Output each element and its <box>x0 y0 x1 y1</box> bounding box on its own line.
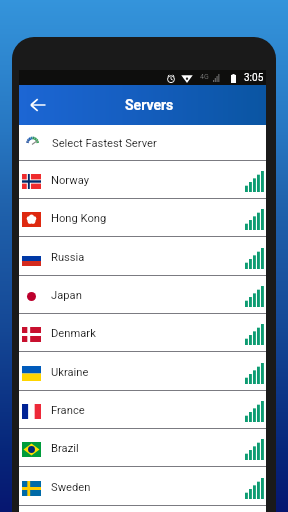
button[interactable]: Russia <box>19 237 266 275</box>
button[interactable]: Ukraine <box>19 352 266 390</box>
button[interactable]: Norway <box>19 161 266 198</box>
staticText: Norway <box>51 174 89 187</box>
staticText: Servers <box>125 97 174 113</box>
staticText: Ukraine <box>51 366 89 379</box>
staticText: Hong Kong <box>51 212 107 225</box>
button[interactable]: Japan <box>19 276 266 313</box>
button[interactable]: Brazil <box>19 429 266 466</box>
staticText: France <box>51 404 85 417</box>
button[interactable]: France <box>19 391 266 428</box>
staticText: Russia <box>51 251 85 264</box>
staticText: 3:05 <box>244 72 264 84</box>
staticText: Sweden <box>51 481 91 494</box>
button[interactable]: Denmark <box>19 314 266 351</box>
staticText: Japan <box>51 289 82 302</box>
staticText: 4G <box>200 73 209 81</box>
button[interactable]: Back <box>20 87 56 123</box>
staticText: Brazil <box>51 442 79 455</box>
button[interactable]: Hong Kong <box>19 199 266 236</box>
staticText: Denmark <box>51 327 96 340</box>
button[interactable]: Sweden <box>19 467 266 505</box>
button[interactable]: Select Fastest Server <box>19 125 266 160</box>
staticText: Select Fastest Server <box>52 137 157 150</box>
